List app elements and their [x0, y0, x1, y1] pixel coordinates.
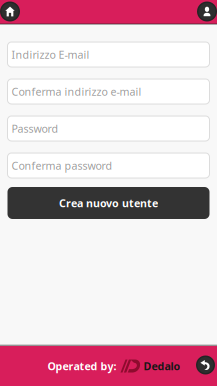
- staticText: Dedalo: [143, 359, 180, 373]
- staticText: Conferma password: [11, 158, 112, 173]
- staticText: Operated by:: [47, 359, 116, 373]
- button[interactable]: Crea nuovo utente: [7, 187, 209, 219]
- button[interactable]: Conferma indirizzo e-mail: [7, 79, 209, 104]
- staticText: Conferma indirizzo e-mail: [11, 84, 141, 99]
- button[interactable]: Home: [0, 1, 20, 21]
- button[interactable]: Password: [7, 116, 209, 141]
- button[interactable]: Indirizzo E-mail: [7, 42, 209, 67]
- button[interactable]: Account: [197, 1, 217, 21]
- staticText: Password: [11, 121, 58, 136]
- button[interactable]: Conferma password: [7, 153, 209, 178]
- button[interactable]: Back: [196, 355, 215, 374]
- staticText: Crea nuovo utente: [59, 196, 158, 210]
- staticText: Indirizzo E-mail: [11, 47, 89, 62]
